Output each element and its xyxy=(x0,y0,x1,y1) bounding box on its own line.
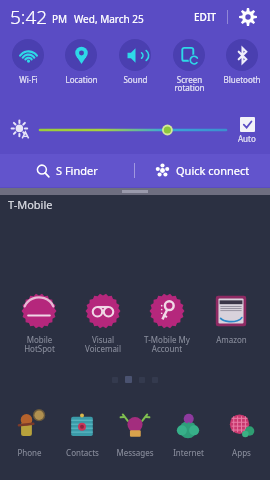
button[interactable] xyxy=(40,117,226,143)
staticText: 5:42 xyxy=(10,4,48,30)
staticText: Mobile HotSpot xyxy=(24,334,55,355)
button[interactable]: Visual Voicemail xyxy=(72,292,134,355)
button[interactable]: Phone xyxy=(3,408,55,458)
button[interactable]: Screen rotation xyxy=(163,36,215,93)
staticText: EDIT xyxy=(194,10,217,24)
button[interactable]: Contacts xyxy=(56,408,108,458)
button[interactable]: EDIT xyxy=(190,6,221,28)
button[interactable]: Sound xyxy=(109,36,161,85)
button[interactable]: Quick connect xyxy=(135,154,270,187)
button[interactable]: Amazon xyxy=(200,292,262,345)
staticText: Wed, March 25 xyxy=(74,12,144,26)
staticText: Bluetooth xyxy=(223,74,261,85)
staticText: T-Mobile xyxy=(8,197,53,212)
button[interactable]: Mobile HotSpot xyxy=(8,292,70,355)
staticText: PM xyxy=(52,12,68,26)
button[interactable]: Auto xyxy=(232,117,262,144)
button[interactable]: S Finder xyxy=(0,154,134,187)
staticText: Wi-Fi xyxy=(19,74,38,85)
button[interactable]: Bluetooth xyxy=(216,36,268,85)
button[interactable]: Wi-Fi xyxy=(2,36,54,85)
staticText: Sound xyxy=(123,74,148,85)
staticText: Visual Voicemail xyxy=(85,334,121,355)
staticText: Location xyxy=(65,74,98,85)
button[interactable]: Internet xyxy=(162,408,214,458)
staticText: Contacts xyxy=(66,447,99,458)
staticText: Auto xyxy=(238,133,256,144)
staticText: Messages xyxy=(116,447,154,458)
button[interactable]: Location xyxy=(55,36,107,85)
staticText: Amazon xyxy=(216,334,247,345)
staticText: Screen rotation xyxy=(174,74,205,93)
staticText: Phone xyxy=(17,447,42,458)
button[interactable]: Messages xyxy=(109,408,161,458)
staticText: S Finder xyxy=(56,163,98,178)
button[interactable]: Apps xyxy=(215,408,267,458)
staticText: Apps xyxy=(232,447,251,458)
button[interactable]: Settings xyxy=(236,5,260,29)
staticText: T-Mobile My Account xyxy=(144,334,190,355)
staticText: Internet xyxy=(173,447,204,458)
button[interactable]: Auto brightness xyxy=(8,117,34,143)
staticText: Quick connect xyxy=(176,163,250,178)
button[interactable]: T-Mobile My Account xyxy=(136,292,198,355)
